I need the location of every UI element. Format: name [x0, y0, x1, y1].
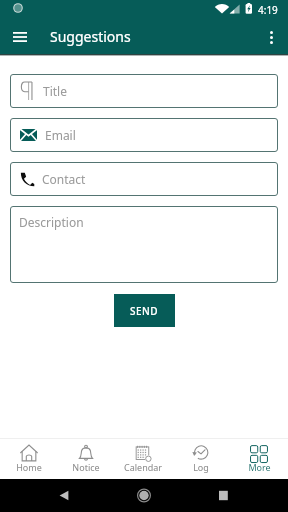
staticText: Home: [16, 461, 42, 473]
button[interactable]: Home: [0, 439, 57, 479]
staticText: 4:19: [258, 3, 278, 17]
staticText: Notice: [72, 461, 100, 473]
button[interactable]: Title: [10, 74, 278, 108]
staticText: SEND: [130, 304, 159, 318]
staticText: Title: [43, 83, 67, 99]
button[interactable]: Contact: [10, 162, 278, 196]
staticText: More: [248, 461, 271, 473]
button[interactable]: More: [230, 439, 288, 479]
staticText: Email: [45, 127, 76, 143]
staticText: Suggestions: [50, 27, 131, 46]
button[interactable]: Calendar: [114, 439, 172, 479]
staticText: Contact: [42, 171, 86, 187]
button[interactable]: Email: [10, 118, 278, 152]
staticText: Description: [19, 214, 84, 230]
staticText: Calendar: [124, 461, 162, 473]
staticText: Log: [193, 461, 209, 473]
button[interactable]: Description: [10, 206, 278, 283]
button[interactable]: Open navigation drawer: [6, 23, 34, 51]
button[interactable]: Notice: [57, 439, 114, 479]
button[interactable]: Log: [172, 439, 230, 479]
button[interactable]: SEND: [114, 294, 175, 327]
button[interactable]: More options: [257, 23, 285, 51]
